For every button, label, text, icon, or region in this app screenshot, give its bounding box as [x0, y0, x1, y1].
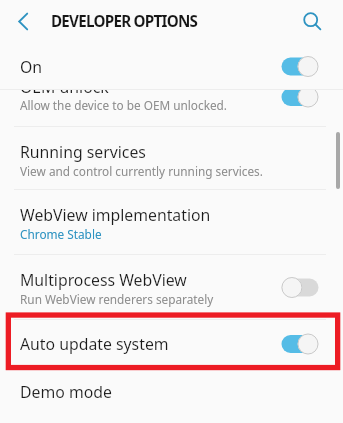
- button[interactable]: [0, 368, 343, 423]
- staticText: WebView implementation: [20, 204, 211, 226]
- button[interactable]: [0, 320, 343, 368]
- staticText: Demo mode: [20, 381, 112, 403]
- staticText: On: [20, 56, 43, 78]
- staticText: Allow the device to be OEM unlocked.: [20, 97, 228, 113]
- staticText: Run WebView renderers separately: [20, 291, 214, 307]
- button[interactable]: [0, 255, 343, 320]
- staticText: Running services: [20, 141, 146, 163]
- staticText: OEM unlock: [20, 76, 109, 98]
- staticText: DEVELOPER OPTIONS: [51, 11, 198, 32]
- button[interactable]: [0, 127, 343, 190]
- staticText: Auto update system: [20, 333, 169, 355]
- button[interactable]: [0, 190, 343, 255]
- button[interactable]: Back: [6, 5, 40, 39]
- button[interactable]: Search: [296, 5, 330, 39]
- staticText: View and control currently running servi…: [20, 163, 263, 179]
- staticText: Multiprocess WebView: [20, 269, 187, 291]
- button[interactable]: [0, 43, 343, 90]
- button[interactable]: [0, 62, 343, 127]
- staticText: Chrome Stable: [20, 226, 102, 242]
